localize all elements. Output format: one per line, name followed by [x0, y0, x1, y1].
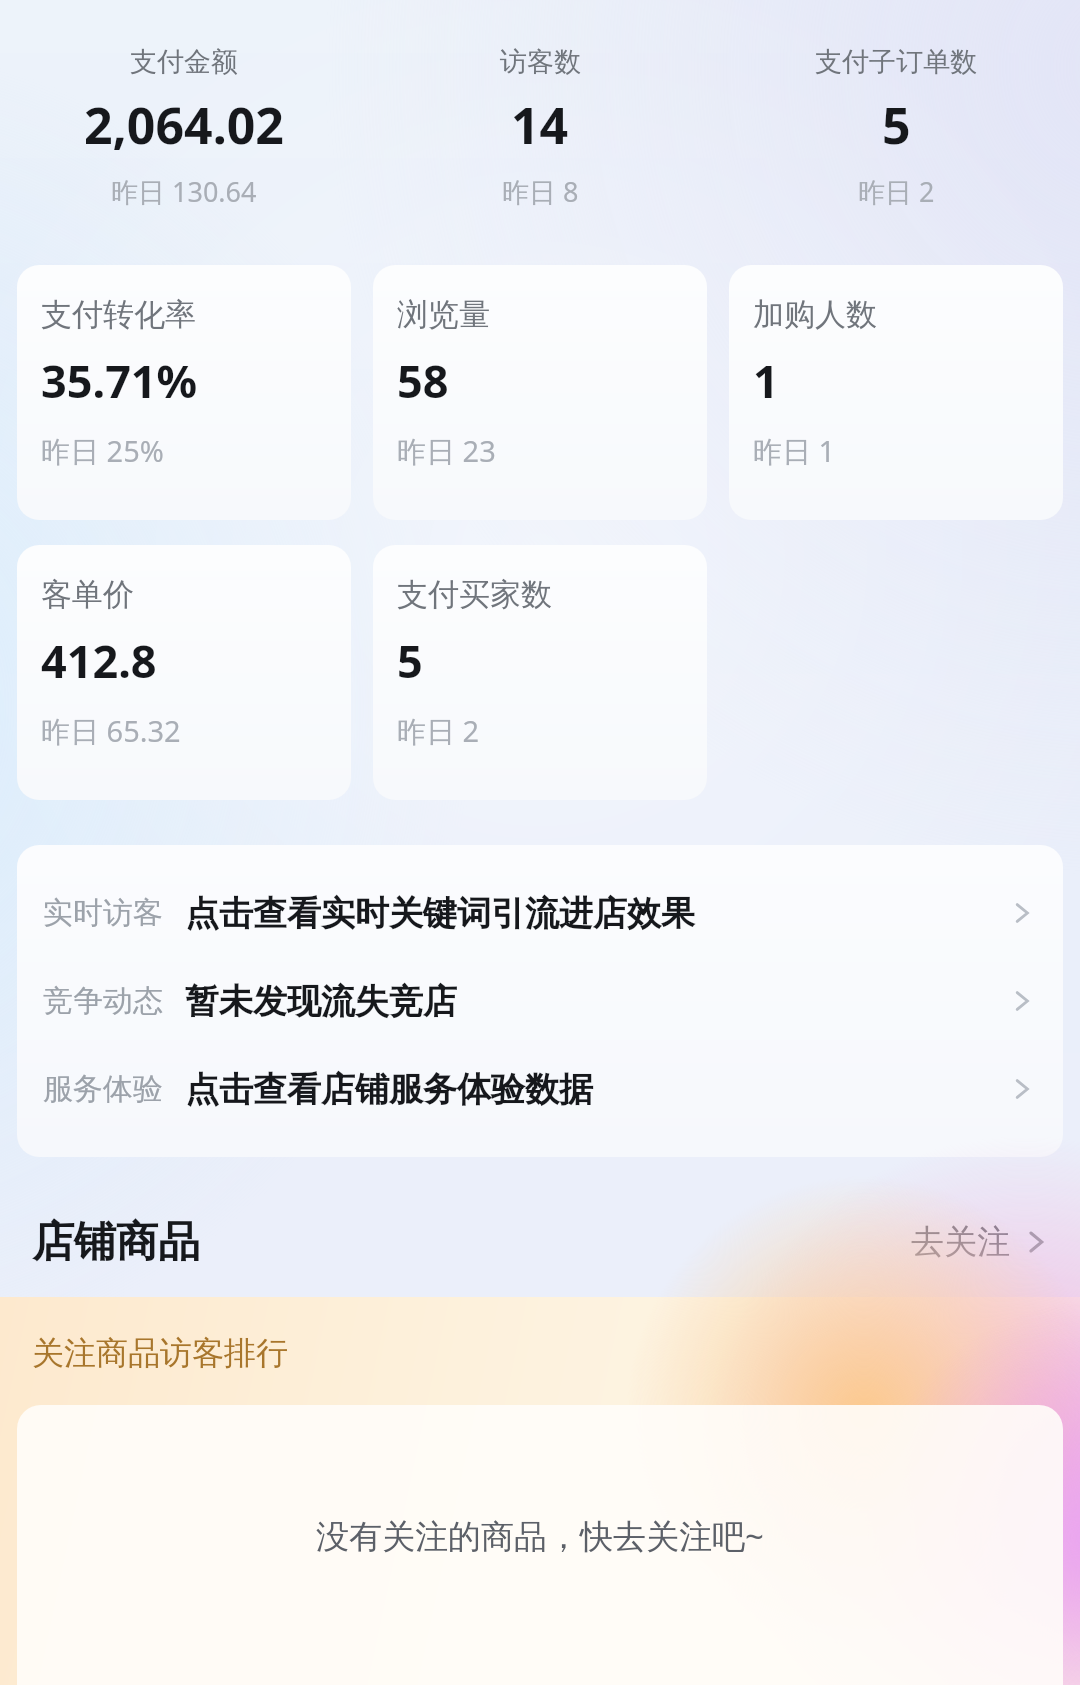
staticText: 昨日 65.32 — [41, 711, 181, 751]
staticText: 实时访客 — [43, 894, 163, 932]
staticText: 暂未发现流失竞店 — [185, 980, 457, 1023]
staticText: 客单价 — [41, 575, 134, 614]
staticText: 1 — [753, 350, 779, 411]
staticText: 昨日 2 — [397, 711, 480, 751]
staticText: 412.8 — [41, 630, 157, 691]
staticText: 昨日 25% — [41, 431, 164, 471]
staticText: 支付转化率 — [41, 295, 196, 334]
staticText: 昨日 23 — [397, 431, 496, 471]
staticText: 访客数 — [500, 45, 581, 79]
button[interactable]: 支付转化率 — [17, 265, 351, 520]
staticText: 14 — [511, 91, 569, 159]
staticText: 支付子订单数 — [815, 45, 977, 79]
staticText: 店铺商品 — [32, 1216, 200, 1269]
staticText: 支付买家数 — [397, 575, 552, 614]
button[interactable]: 浏览量 — [373, 265, 707, 520]
staticText: 昨日 130.64 — [111, 173, 257, 210]
staticText: 加购人数 — [753, 295, 877, 334]
button[interactable]: 竞争动态 — [17, 957, 1063, 1045]
button[interactable]: 客单价 — [17, 545, 351, 800]
button[interactable]: 服务体验 — [17, 1045, 1063, 1133]
button[interactable]: 支付买家数 — [373, 545, 707, 800]
staticText: 昨日 8 — [502, 173, 579, 210]
staticText: 5 — [882, 91, 911, 159]
staticText: 昨日 1 — [753, 431, 836, 471]
button[interactable]: 去关注 — [911, 1221, 1052, 1263]
staticText: 昨日 2 — [858, 173, 935, 210]
staticText: 58 — [397, 350, 449, 411]
staticText: 服务体验 — [43, 1070, 163, 1108]
staticText: 2,064.02 — [84, 91, 284, 159]
button[interactable]: 加购人数 — [729, 265, 1063, 520]
staticText: 关注商品访客排行 — [32, 1333, 288, 1373]
staticText: 浏览量 — [397, 295, 490, 334]
staticText: 支付金额 — [130, 45, 238, 79]
button[interactable]: 支付子订单数 — [718, 45, 1074, 210]
staticText: 35.71% — [41, 350, 198, 411]
staticText: 竞争动态 — [43, 982, 163, 1020]
staticText: 5 — [397, 630, 423, 691]
staticText: 点击查看店铺服务体验数据 — [185, 1068, 593, 1111]
staticText: 点击查看实时关键词引流进店效果 — [185, 892, 695, 935]
button[interactable]: 支付金额 — [6, 45, 362, 210]
staticText: 没有关注的商品，快去关注吧~ — [316, 1513, 764, 1558]
button[interactable]: 实时访客 — [17, 869, 1063, 957]
staticText: 去关注 — [911, 1221, 1010, 1263]
button[interactable]: 访客数 — [362, 45, 718, 210]
